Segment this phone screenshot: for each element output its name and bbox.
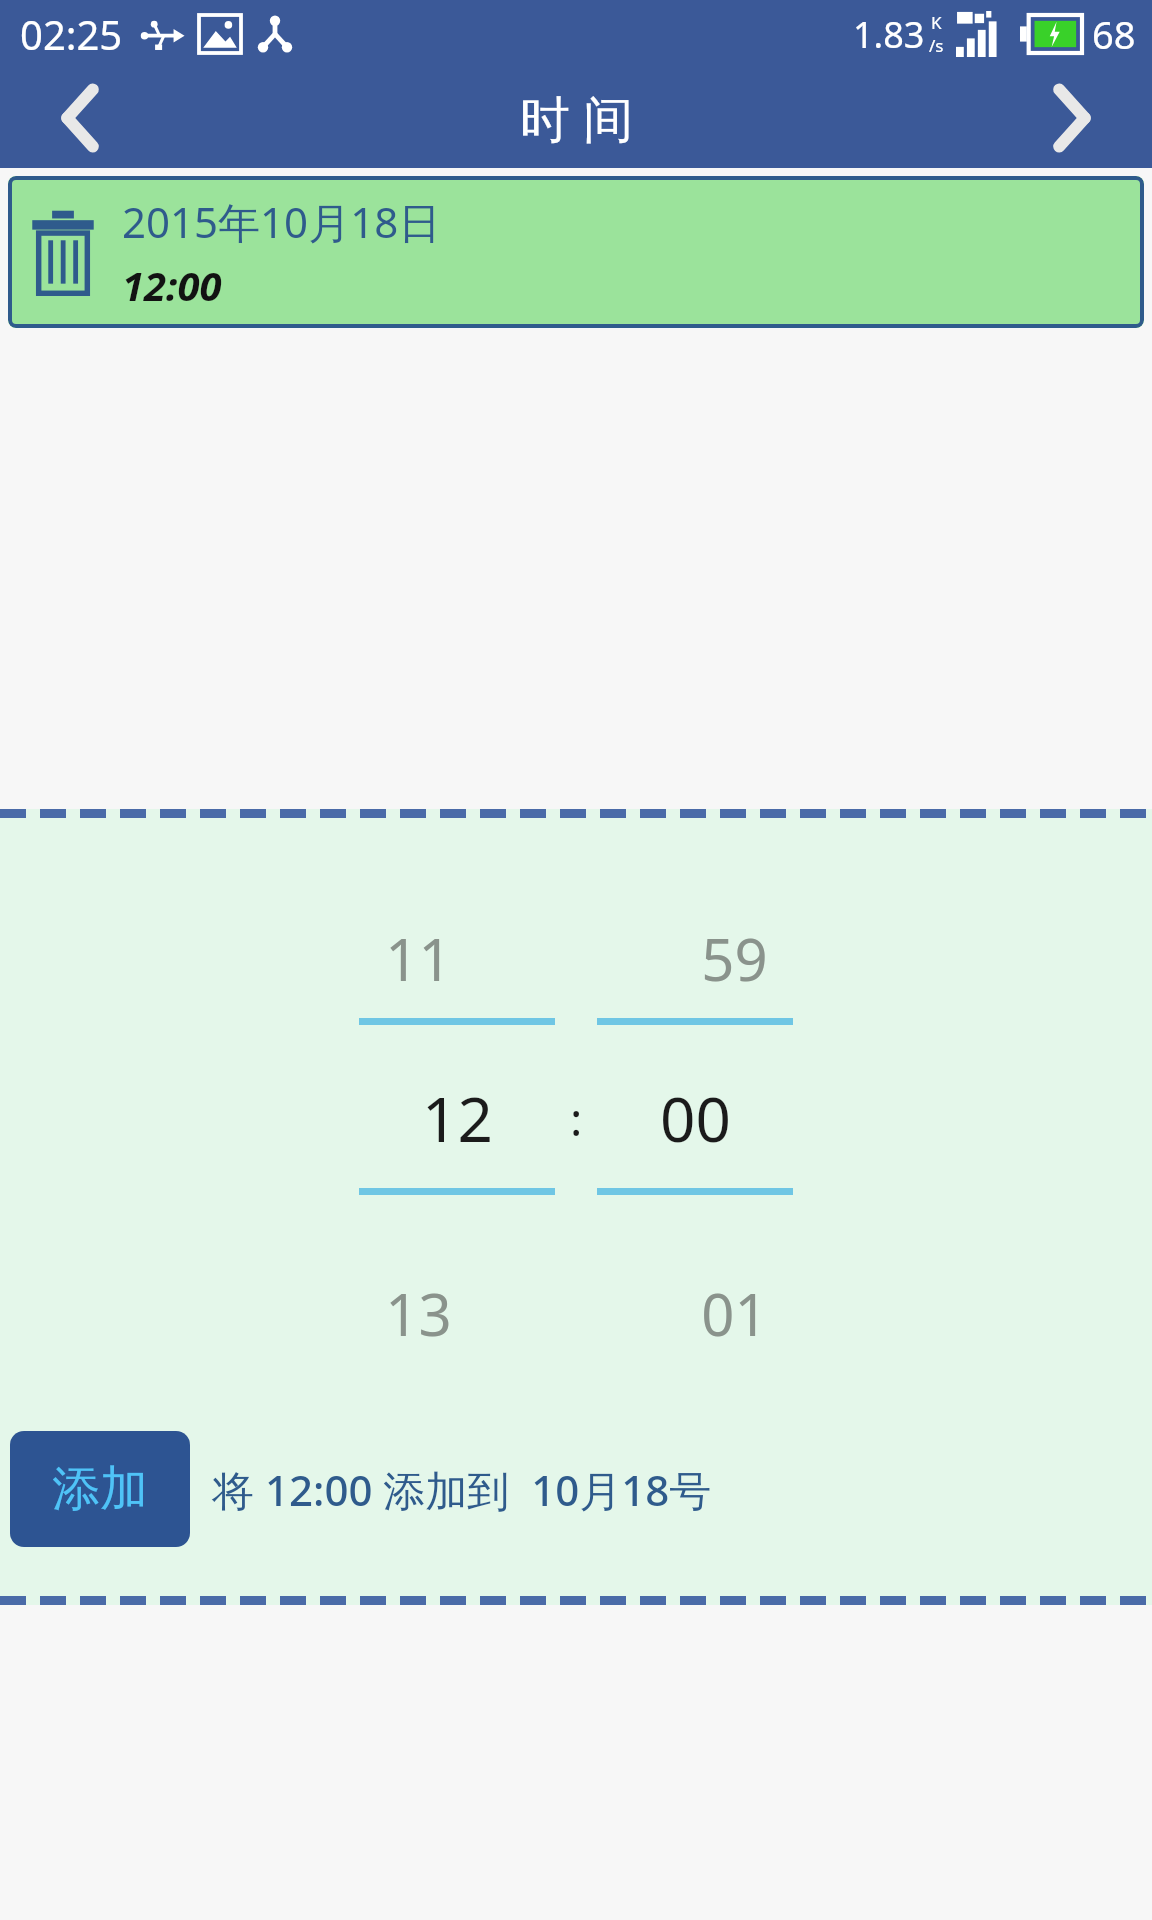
staticText: 1.83 bbox=[853, 10, 925, 59]
staticText: 12 bbox=[422, 1076, 493, 1160]
staticText: 02:25 bbox=[20, 7, 123, 61]
staticText: 01 bbox=[701, 1274, 768, 1353]
staticText: 13 bbox=[385, 1274, 452, 1353]
staticText: K bbox=[931, 11, 942, 34]
staticText: : bbox=[570, 1087, 583, 1150]
staticText: /s bbox=[929, 34, 944, 57]
staticText: 时 间 bbox=[520, 84, 633, 152]
button[interactable]: 13 bbox=[320, 1268, 516, 1358]
button[interactable]: Previous bbox=[0, 68, 160, 168]
staticText: 12:00 bbox=[122, 258, 222, 312]
button[interactable]: 添加 bbox=[10, 1431, 190, 1547]
button[interactable]: 01 bbox=[636, 1268, 832, 1358]
staticText: 00 bbox=[660, 1076, 731, 1160]
button[interactable]: Next bbox=[992, 68, 1152, 168]
button[interactable]: 59 bbox=[636, 913, 832, 1003]
staticText: 11 bbox=[385, 919, 452, 998]
staticText: 添加 bbox=[52, 1459, 148, 1519]
staticText: 将 12:00 添加到 10月18号 bbox=[212, 1461, 712, 1518]
button[interactable]: 00 bbox=[597, 1061, 793, 1175]
staticText: 68 bbox=[1092, 8, 1136, 60]
other: Delete bbox=[31, 209, 95, 295]
button[interactable]: Delete bbox=[8, 176, 1144, 328]
staticText: 59 bbox=[701, 919, 768, 998]
staticText: 2015年10月18日 bbox=[122, 193, 441, 250]
button[interactable]: 11 bbox=[320, 913, 516, 1003]
button[interactable]: 12 bbox=[359, 1061, 555, 1175]
